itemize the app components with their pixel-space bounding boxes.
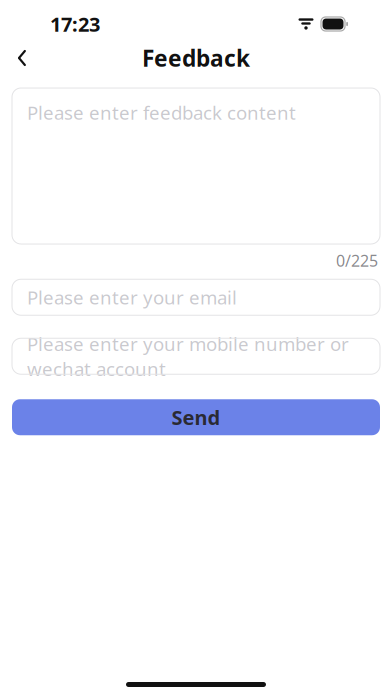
staticText: Please enter feedback content <box>27 100 296 125</box>
button[interactable]: Please enter feedback content <box>12 88 380 244</box>
staticText: 17:23 <box>50 11 100 37</box>
staticText: Please enter your email <box>27 285 237 310</box>
button[interactable]: Please enter your mobile number or wecha… <box>12 338 380 374</box>
button[interactable]: Please enter your email <box>12 279 380 315</box>
staticText: Feedback <box>142 43 250 73</box>
button[interactable]: Send <box>12 399 380 435</box>
button[interactable]: Back <box>0 38 44 78</box>
staticText: Please enter your mobile number or wecha… <box>27 331 349 381</box>
staticText: 0/225 <box>336 250 378 271</box>
staticText: Send <box>171 404 220 431</box>
